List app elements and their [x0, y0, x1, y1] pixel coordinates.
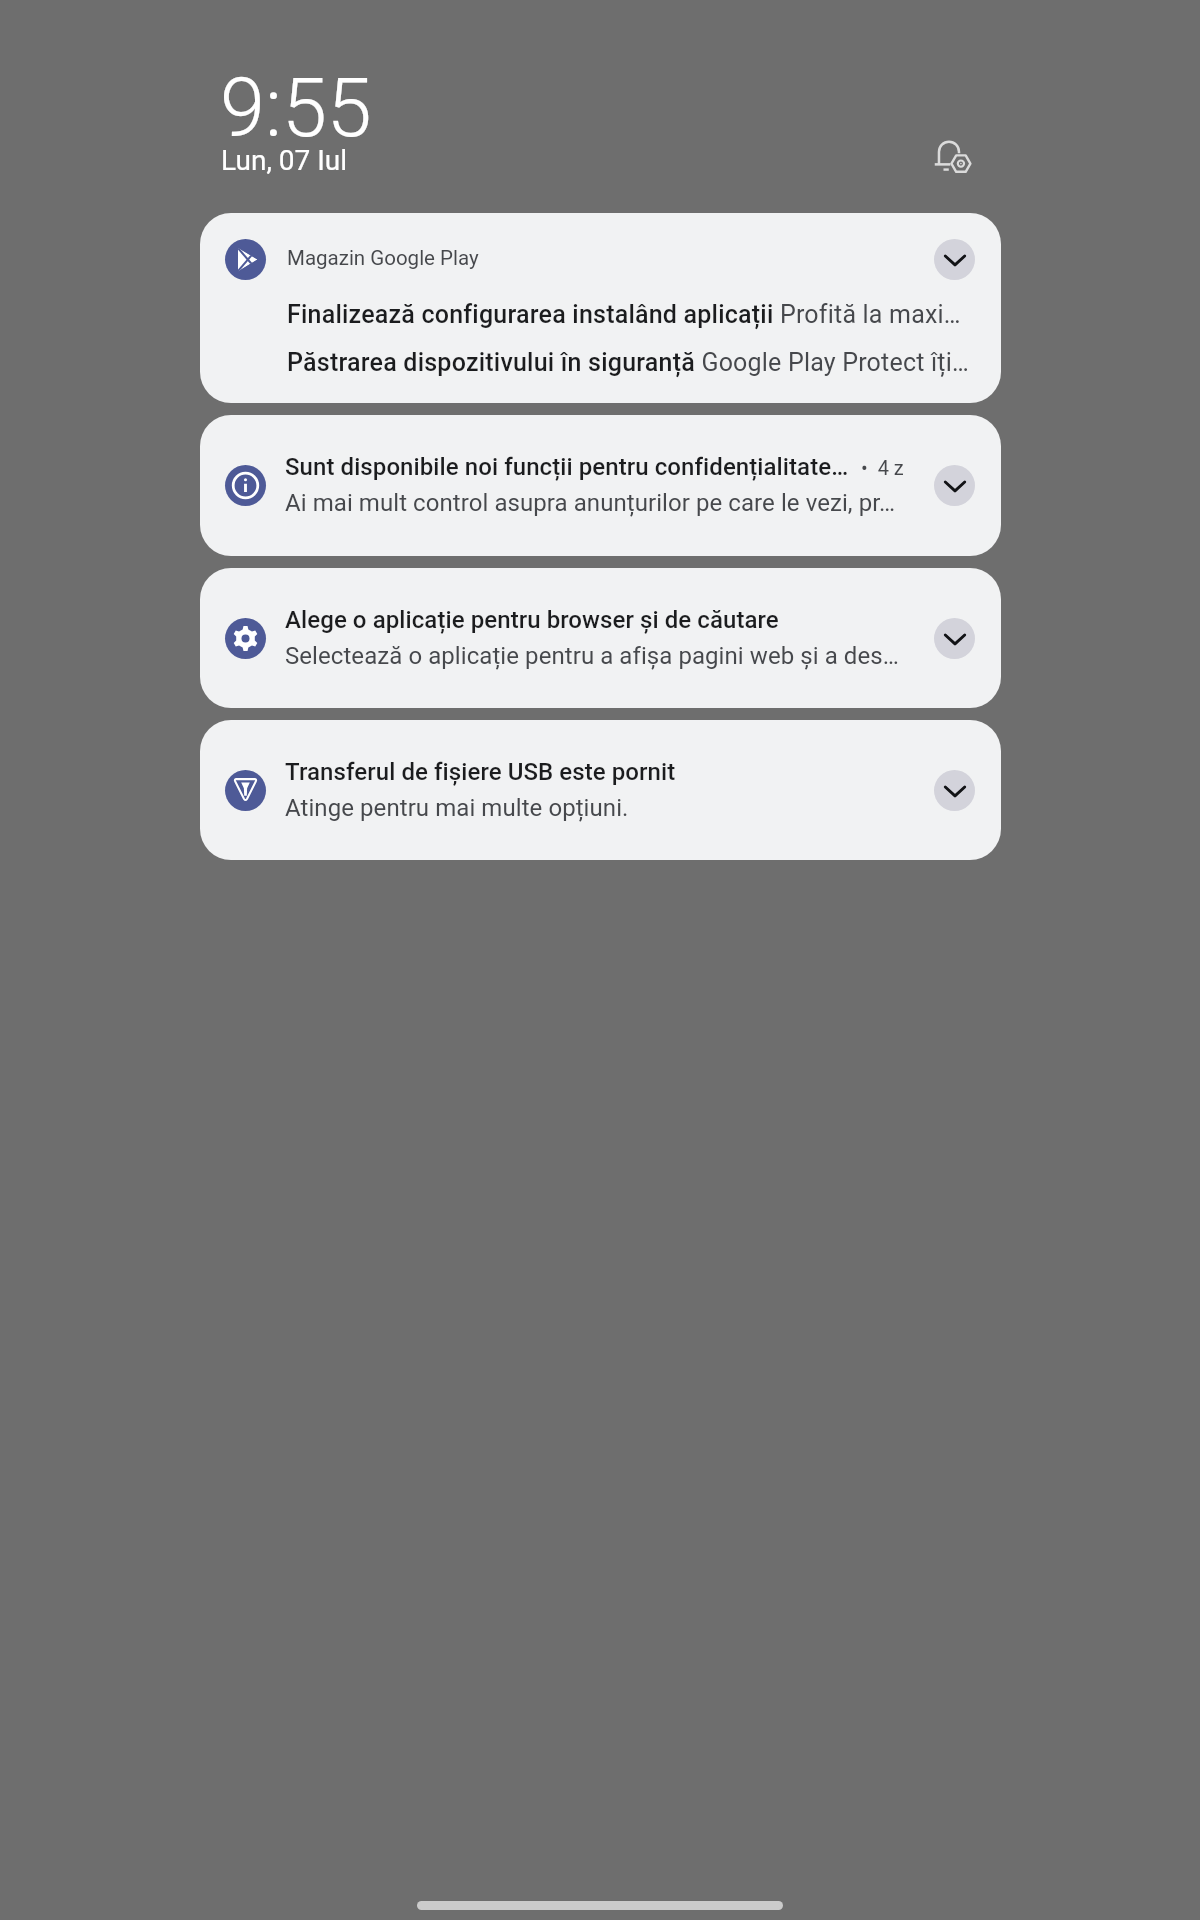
staticText: Atinge pentru mai multe opțiuni.: [285, 794, 925, 822]
staticText: • 4 z: [861, 456, 904, 479]
staticText: Finalizează configurarea instalând aplic…: [287, 300, 987, 329]
staticText: Alege o aplicație pentru browser și de c…: [285, 606, 925, 634]
staticText: Selectează o aplicație pentru a afișa pa…: [285, 642, 925, 670]
button[interactable]: Transferul de fișiere USB este pornit: [200, 720, 1001, 860]
button[interactable]: Sunt disponibile noi funcții pentru conf…: [200, 415, 1001, 556]
button[interactable]: Expand notification: [934, 465, 975, 506]
staticText: Păstrarea dispozitivului în siguranță Go…: [287, 348, 987, 377]
button[interactable]: Expand notification: [934, 239, 975, 280]
staticText: Magazin Google Play: [287, 246, 479, 270]
staticText: Sunt disponibile noi funcții pentru conf…: [285, 453, 925, 481]
staticText: 9:55: [220, 61, 372, 156]
button[interactable]: Expand notification: [934, 770, 975, 811]
staticText: Transferul de fișiere USB este pornit: [285, 758, 925, 786]
button[interactable]: Magazin Google Play: [200, 213, 1001, 403]
staticText: Lun, 07 Iul: [221, 144, 348, 177]
button[interactable]: Notification settings: [923, 130, 981, 188]
staticText: Ai mai mult control asupra anunțurilor p…: [285, 489, 925, 517]
button[interactable]: Alege o aplicație pentru browser și de c…: [200, 568, 1001, 708]
button[interactable]: Expand notification: [934, 618, 975, 659]
